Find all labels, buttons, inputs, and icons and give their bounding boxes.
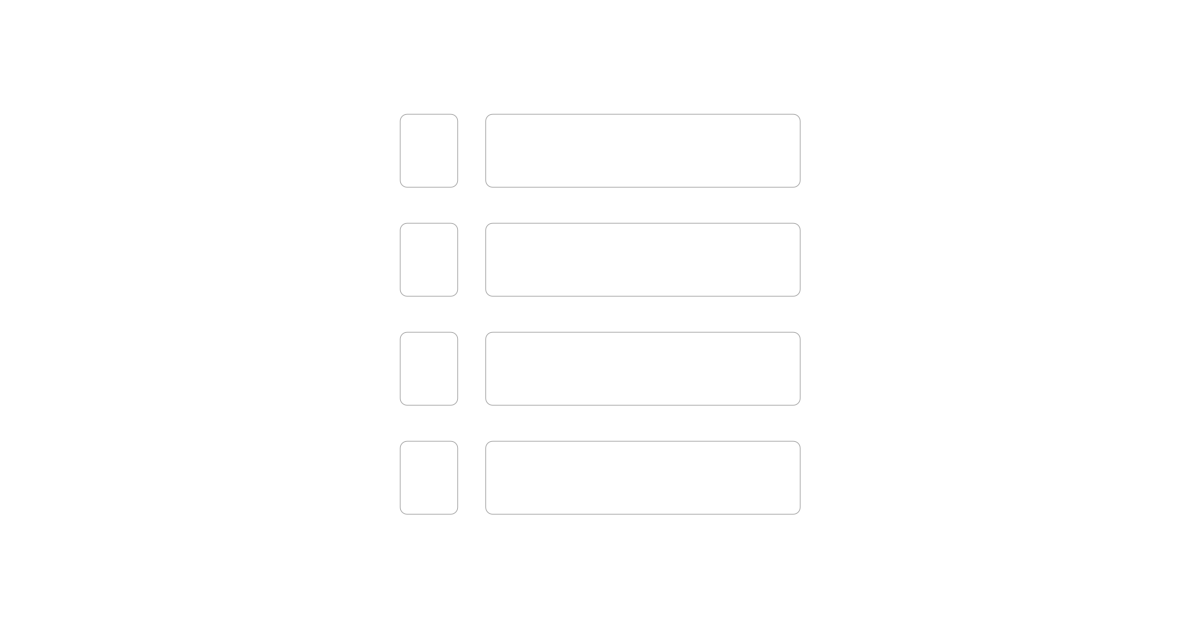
button[interactable]: Loading item bbox=[400, 441, 800, 514]
button[interactable]: Loading item bbox=[400, 223, 800, 296]
button[interactable]: Loading item bbox=[400, 114, 800, 187]
button[interactable]: Loading item bbox=[400, 332, 800, 405]
